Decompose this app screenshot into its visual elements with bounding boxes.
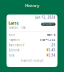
staticText: Visa ••1234 [39,38,55,42]
staticText: View full receipt [20,59,43,62]
staticText: Main St [46,33,55,36]
button[interactable]: View full receipt [8,58,55,63]
staticText: Subtotal [8,48,19,52]
staticText: History [25,3,39,8]
staticText: Grande · Oat [8,26,25,29]
staticText: $5.94 [46,54,55,57]
staticText: Payment [8,38,19,42]
staticText: Store [8,33,15,36]
button[interactable]: Reorder [41,23,55,26]
staticText: $5.45 [46,48,55,52]
staticText: Stars earned [8,43,24,47]
staticText: Jun 12, 2024 [35,16,55,19]
staticText: Latte [8,20,18,25]
staticText: Reorder [42,22,54,26]
staticText: 25 [51,43,55,47]
staticText: Total [8,54,14,57]
